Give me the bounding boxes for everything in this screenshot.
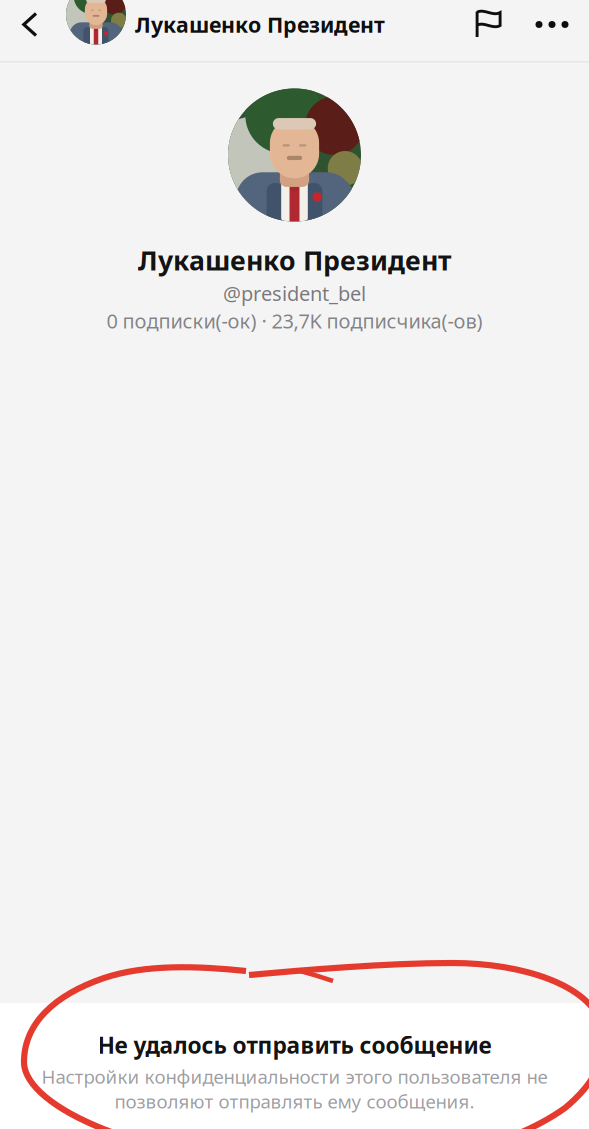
staticText: Не удалось отправить сообщение [97, 1030, 491, 1060]
staticText: @president_bel [223, 280, 366, 306]
button[interactable]: Report [467, 0, 511, 50]
button[interactable]: More options [535, 0, 569, 50]
staticText: Лукашенко Президент [135, 10, 385, 39]
staticText: 0 подписки(-ок) · 23,7K подписчика(-ов) [106, 307, 482, 334]
staticText: Лукашенко Президент [138, 242, 451, 278]
button[interactable]: Лукашенко Президент [66, 0, 385, 54]
staticText: Настройки конфиденциальности этого польз… [41, 1064, 547, 1089]
staticText: позволяют отправлять ему сообщения. [114, 1089, 474, 1114]
button[interactable]: Back [10, 0, 50, 50]
